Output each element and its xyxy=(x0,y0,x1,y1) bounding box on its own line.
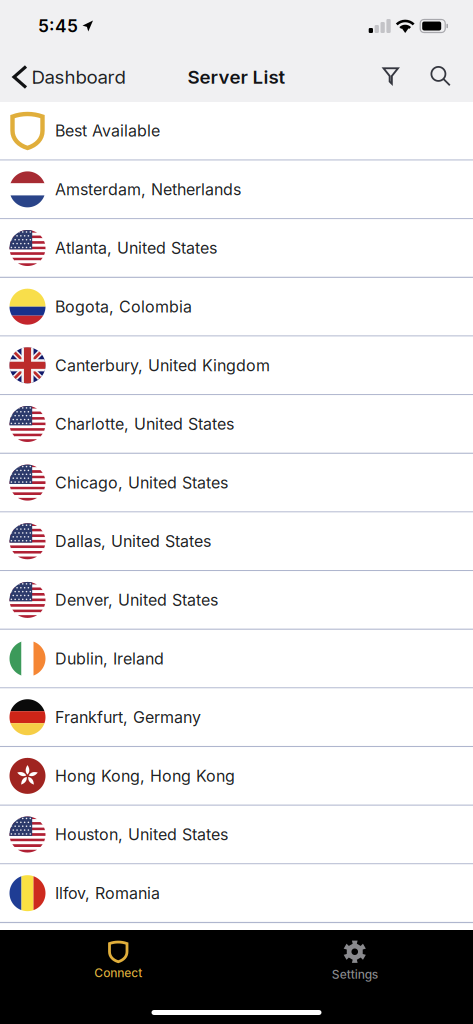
button[interactable]: Dashboard xyxy=(0,59,125,95)
button[interactable]: Houston, United States xyxy=(0,806,473,864)
staticText: Settings xyxy=(332,967,378,982)
staticText: Dashboard xyxy=(31,66,125,88)
button[interactable]: Denver, United States xyxy=(0,571,473,630)
button[interactable]: Settings xyxy=(236,935,473,987)
staticText: Denver, United States xyxy=(55,590,218,610)
staticText: Canterbury, United Kingdom xyxy=(55,356,270,375)
button[interactable]: Charlotte, United States xyxy=(0,395,473,454)
button[interactable]: Bogota, Colombia xyxy=(0,278,473,337)
button[interactable]: Chicago, United States xyxy=(0,454,473,513)
button[interactable]: Atlanta, United States xyxy=(0,219,473,278)
button[interactable]: Canterbury, United Kingdom xyxy=(0,337,473,395)
staticText: 5:45 xyxy=(38,15,78,36)
button[interactable]: Connect xyxy=(0,935,236,987)
staticText: Charlotte, United States xyxy=(55,414,234,434)
staticText: Bogota, Colombia xyxy=(55,297,192,316)
staticText: Frankfurt, Germany xyxy=(55,707,201,727)
button[interactable]: Amsterdam, Netherlands xyxy=(0,161,473,219)
staticText: Dallas, United States xyxy=(55,532,211,551)
staticText: Hong Kong, Hong Kong xyxy=(55,766,235,786)
button[interactable]: Dublin, Ireland xyxy=(0,630,473,688)
staticText: Amsterdam, Netherlands xyxy=(55,180,241,199)
staticText: Houston, United States xyxy=(55,825,228,844)
staticText: Chicago, United States xyxy=(55,473,228,492)
staticText: Dublin, Ireland xyxy=(55,649,164,668)
staticText: Atlanta, United States xyxy=(55,238,217,258)
staticText: Server List xyxy=(187,66,285,88)
staticText: Ilfov, Romania xyxy=(55,883,160,903)
staticText: Best Available xyxy=(55,121,160,140)
button[interactable]: Best Available xyxy=(0,102,473,161)
button[interactable]: Frankfurt, Germany xyxy=(0,688,473,747)
button[interactable]: Filter xyxy=(372,61,409,93)
button[interactable]: Hong Kong, Hong Kong xyxy=(0,747,473,806)
staticText: Connect xyxy=(94,966,142,980)
button[interactable]: Dallas, United States xyxy=(0,512,473,571)
button[interactable]: Search xyxy=(409,59,473,94)
button[interactable]: Ilfov, Romania xyxy=(0,864,473,923)
